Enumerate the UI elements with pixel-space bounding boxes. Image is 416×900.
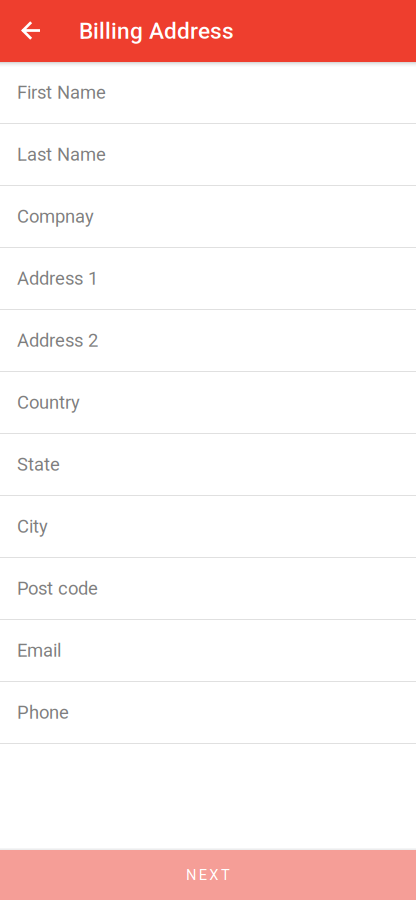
staticText: Address 2 xyxy=(17,330,98,351)
staticText: Country xyxy=(17,392,80,413)
staticText: First Name xyxy=(17,82,106,103)
button[interactable]: First Name xyxy=(0,62,416,124)
staticText: Post code xyxy=(17,578,98,599)
button[interactable]: Email xyxy=(0,620,416,682)
button[interactable]: Post code xyxy=(0,558,416,620)
staticText: State xyxy=(17,454,60,475)
button[interactable]: Address 1 xyxy=(0,248,416,310)
button[interactable]: Last Name xyxy=(0,124,416,186)
button[interactable]: NEXT xyxy=(0,848,416,900)
staticText: Email xyxy=(17,640,61,661)
staticText: Compnay xyxy=(17,206,94,227)
staticText: NEXT xyxy=(186,866,230,884)
button[interactable]: Compnay xyxy=(0,186,416,248)
button[interactable]: Address 2 xyxy=(0,310,416,372)
button[interactable]: State xyxy=(0,434,416,496)
staticText: Address 1 xyxy=(17,268,98,289)
staticText: Billing Address xyxy=(79,18,234,44)
button[interactable]: Back xyxy=(0,0,79,62)
staticText: Phone xyxy=(17,702,69,723)
button[interactable]: Phone xyxy=(0,682,416,744)
staticText: Last Name xyxy=(17,144,106,165)
staticText: City xyxy=(17,516,48,537)
button[interactable]: City xyxy=(0,496,416,558)
button[interactable]: Country xyxy=(0,372,416,434)
